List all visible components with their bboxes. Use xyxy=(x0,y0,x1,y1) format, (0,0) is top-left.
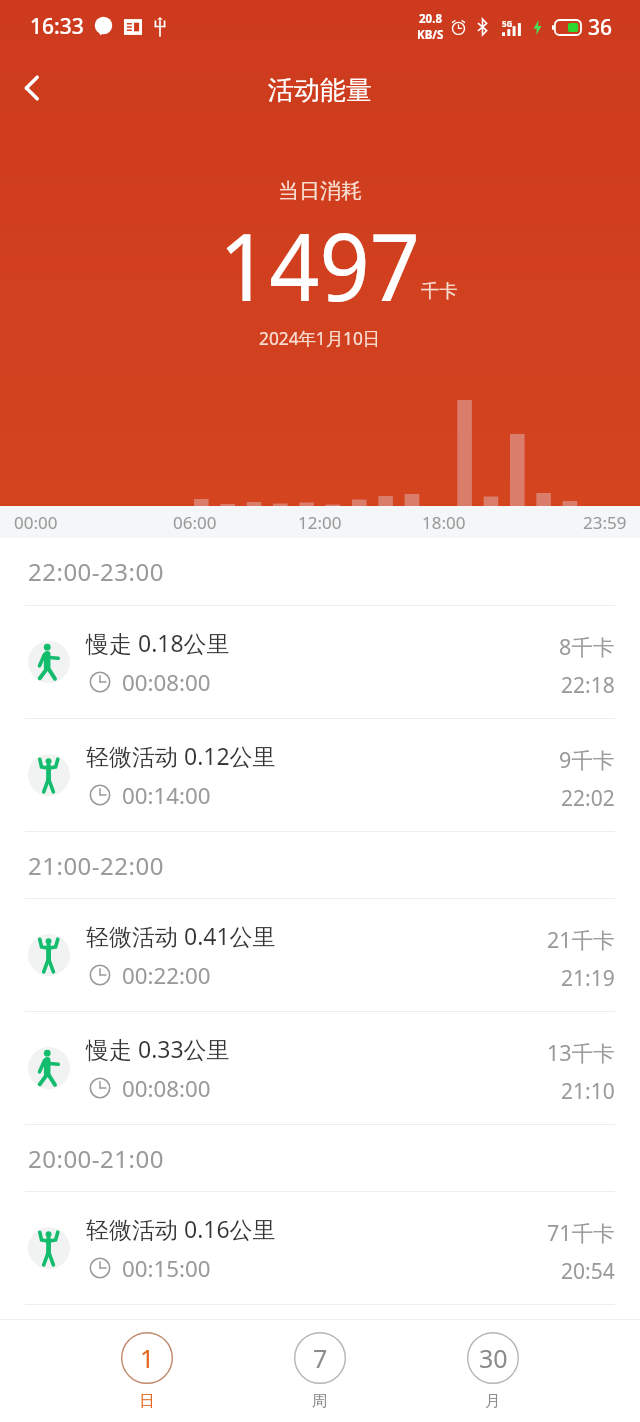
staticText: 活动能量 xyxy=(268,74,372,107)
staticText: 21:00-22:00 xyxy=(28,849,164,882)
button[interactable]: Back xyxy=(3,57,65,119)
staticText: 20:54 xyxy=(561,1257,615,1286)
staticText: 日 xyxy=(139,1391,155,1411)
button[interactable]: 轻微活动 0.41公里 xyxy=(0,899,640,1011)
staticText: 轻微活动 0.16公里 xyxy=(86,1213,276,1244)
staticText: KB/S xyxy=(417,27,444,43)
button[interactable]: 轻微活动 0.12公里 xyxy=(0,719,640,831)
staticText: 7 xyxy=(313,1341,328,1375)
staticText: 5G xyxy=(502,18,513,29)
staticText: 2024年1月10日 xyxy=(259,327,381,351)
staticText: 20:00-21:00 xyxy=(28,1142,164,1175)
button[interactable]: 1 xyxy=(121,1320,173,1411)
staticText: 21:10 xyxy=(561,1077,615,1106)
staticText: 00:22:00 xyxy=(122,960,211,990)
staticText: 00:00 xyxy=(14,511,58,534)
button[interactable]: 慢走 0.18公里 xyxy=(0,606,640,718)
staticText: 18:00 xyxy=(422,511,466,534)
staticText: 轻微活动 0.12公里 xyxy=(86,740,276,771)
staticText: 23:59 xyxy=(583,511,627,534)
staticText: 36 xyxy=(588,13,613,42)
staticText: 慢走 0.18公里 xyxy=(86,627,230,658)
staticText: 月 xyxy=(485,1391,501,1411)
staticText: 22:00-23:00 xyxy=(28,555,164,588)
staticText: 轻微活动 0.41公里 xyxy=(86,920,276,951)
staticText: 8千卡 xyxy=(559,632,615,661)
staticText: 21:19 xyxy=(561,964,615,993)
staticText: 00:08:00 xyxy=(122,1073,211,1103)
staticText: 20.8 xyxy=(419,11,442,27)
staticText: 1497 xyxy=(219,201,421,329)
staticText: 00:15:00 xyxy=(122,1253,211,1283)
staticText: 22:02 xyxy=(561,784,615,813)
staticText: 00:08:00 xyxy=(122,667,211,697)
staticText: 慢走 0.33公里 xyxy=(86,1033,230,1064)
staticText: 06:00 xyxy=(173,511,217,534)
staticText: 当日消耗 xyxy=(278,178,362,204)
staticText: 22:18 xyxy=(561,671,615,700)
staticText: 12:00 xyxy=(298,511,342,534)
button[interactable]: 30 xyxy=(467,1320,519,1411)
staticText: 30 xyxy=(479,1341,508,1375)
button[interactable]: 7 xyxy=(294,1320,346,1411)
staticText: 13千卡 xyxy=(547,1038,615,1067)
staticText: 1 xyxy=(140,1341,155,1375)
staticText: 00:14:00 xyxy=(122,780,211,810)
staticText: 21千卡 xyxy=(547,925,615,954)
staticText: 16:33 xyxy=(30,12,84,41)
staticText: 9千卡 xyxy=(559,745,615,774)
staticText: 千卡 xyxy=(421,279,458,302)
button[interactable]: 慢走 0.33公里 xyxy=(0,1012,640,1124)
staticText: 71千卡 xyxy=(547,1218,615,1247)
staticText: 周 xyxy=(312,1391,328,1411)
button[interactable]: 轻微活动 0.16公里 xyxy=(0,1192,640,1304)
